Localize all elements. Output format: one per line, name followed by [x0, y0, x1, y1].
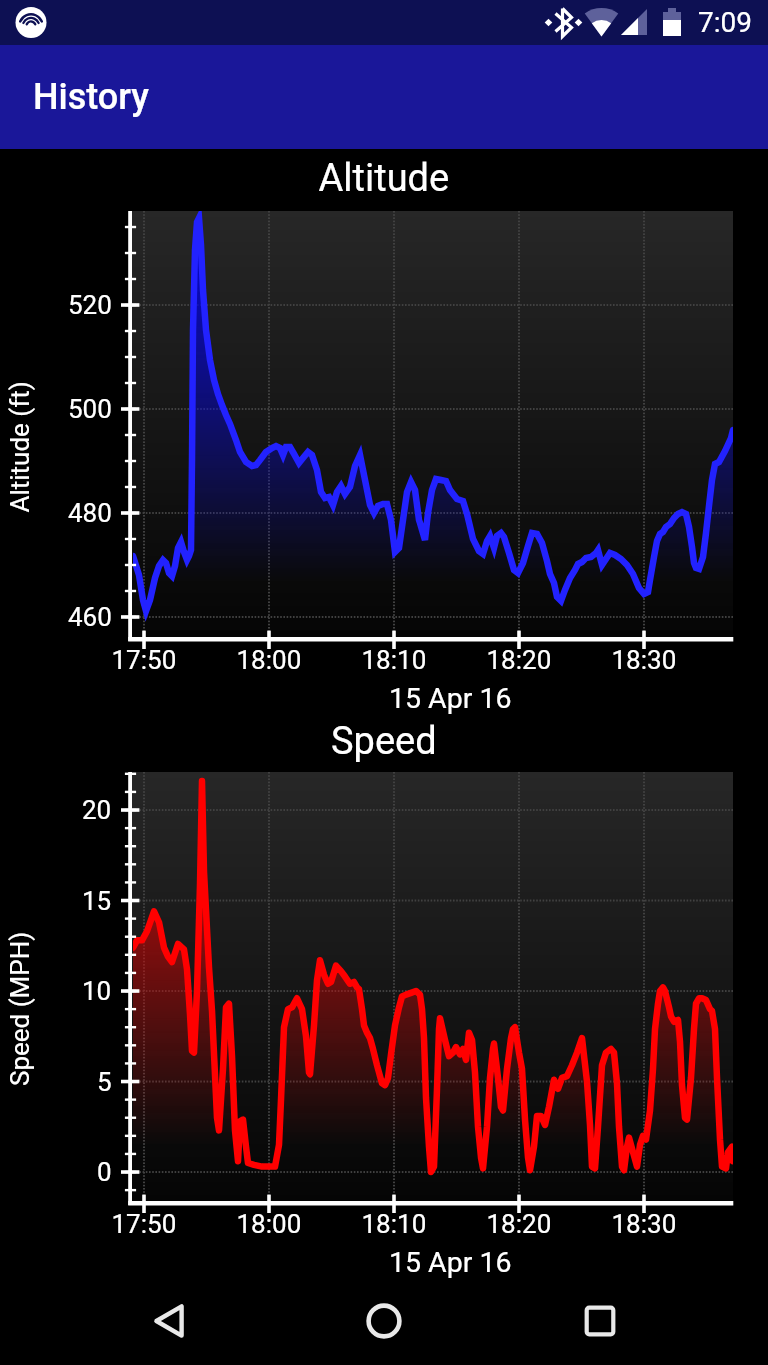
- button[interactable]: Recent apps: [544, 1285, 656, 1357]
- button[interactable]: [0, 45, 768, 149]
- button[interactable]: Back: [113, 1285, 225, 1357]
- button[interactable]: Home: [328, 1285, 440, 1357]
